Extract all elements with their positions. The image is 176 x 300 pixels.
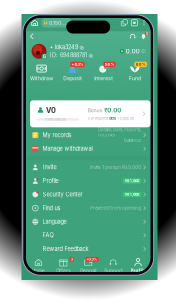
staticText: G <box>43 54 46 59</box>
button[interactable]: +0.3% <box>57 63 88 81</box>
staticText: Home <box>32 268 45 274</box>
staticText: Profile <box>43 177 59 184</box>
staticText: Fund <box>129 75 141 81</box>
staticText: Language <box>43 218 67 225</box>
staticText: My records <box>43 132 72 138</box>
button[interactable]: Withdraw <box>26 63 57 81</box>
staticText: Profile <box>130 268 145 274</box>
staticText: VIP required <box>88 116 108 121</box>
staticText: • loka3249 <box>50 44 78 51</box>
button[interactable]: 0.8% <box>88 63 119 81</box>
button[interactable]: More options <box>140 19 146 27</box>
staticText: ₹ <box>45 21 47 25</box>
staticText: +0.3% <box>86 257 97 261</box>
staticText: Deposit <box>80 268 96 274</box>
staticText: 3 <box>71 257 73 261</box>
button[interactable]: My records <box>26 128 150 142</box>
staticText: ₹0.00 <box>104 107 121 114</box>
button[interactable]: Language <box>26 215 150 228</box>
staticText: 0.150... <box>49 20 67 26</box>
button[interactable]: Manage withdrawal <box>26 142 150 155</box>
button[interactable]: Invite <box>26 160 150 174</box>
staticText: 80% <box>136 62 146 67</box>
staticText: 4 <box>146 32 148 36</box>
staticText: Support <box>104 268 122 274</box>
staticText: Bonus <box>88 107 103 113</box>
button[interactable]: V0 <box>26 100 150 127</box>
staticText: Invite 1 person Rs 5,000 <box>90 165 141 170</box>
staticText: Bets <box>109 116 116 121</box>
button[interactable]: Profile <box>26 174 150 188</box>
staticText: 0.8% <box>104 62 114 67</box>
staticText: Find us <box>43 205 61 211</box>
button[interactable]: Tabs <box>120 19 128 27</box>
button[interactable]: FAQ <box>26 228 150 242</box>
staticText: V0 <box>46 106 56 115</box>
button[interactable]: Home <box>29 19 40 26</box>
staticText: 0.00 <box>126 48 140 55</box>
staticText: ID: 694888781 <box>50 52 87 59</box>
button[interactable]: 3 <box>51 258 76 274</box>
staticText: ₹8 1,000 <box>125 179 139 183</box>
staticText: balance <box>124 138 141 143</box>
staticText: ₹8 1,000 <box>125 192 139 197</box>
button[interactable]: Find us <box>26 201 150 215</box>
staticText: 10,000.00 <box>118 116 134 121</box>
staticText: Invite <box>43 164 57 171</box>
button[interactable]: Security Center <box>26 188 150 201</box>
button[interactable]: Support <box>126 33 139 40</box>
button[interactable]: Home <box>26 258 51 274</box>
staticText: FAQ <box>43 232 54 239</box>
staticText: Offers <box>56 268 70 274</box>
staticText: 0.00/1,000.00 <box>45 117 66 122</box>
staticText: Withdraw <box>30 75 53 81</box>
staticText: Details, bets, reports, recover <box>98 127 141 138</box>
staticText: Interest <box>94 75 113 81</box>
button[interactable]: Notifications <box>139 32 150 40</box>
button[interactable]: +0.3% <box>76 258 101 274</box>
button[interactable]: Back <box>26 32 38 41</box>
button[interactable]: Reward Feedback <box>26 242 150 256</box>
button[interactable]: 80% <box>119 63 150 81</box>
staticText: +0.3% <box>71 62 83 67</box>
staticText: Prevent it from opening <box>90 205 141 211</box>
button[interactable]: Support <box>101 258 126 274</box>
staticText: Manage withdrawal <box>43 145 93 152</box>
staticText: Deposit <box>63 75 82 81</box>
staticText: Reward Feedback <box>43 245 89 252</box>
staticText: Security Center <box>43 191 83 198</box>
button[interactable]: Profile <box>126 258 150 274</box>
button[interactable]: Cast <box>128 20 140 26</box>
